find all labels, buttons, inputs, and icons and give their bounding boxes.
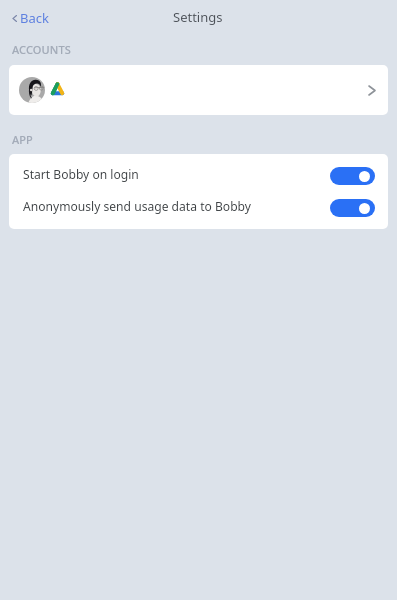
button[interactable]: Back <box>8 5 52 31</box>
other: Open account <box>369 86 375 95</box>
staticText: ACCOUNTS <box>12 42 71 57</box>
button[interactable]: Open account <box>9 65 388 115</box>
staticText: Back <box>20 9 49 27</box>
button[interactable]: Start Bobby on login <box>9 160 388 192</box>
button[interactable]: Toggle Anonymously send usage data to Bo… <box>330 199 375 217</box>
staticText: Start Bobby on login <box>23 166 139 182</box>
staticText: APP <box>12 132 33 147</box>
staticText: Settings <box>173 8 223 26</box>
button[interactable]: Anonymously send usage data to Bobby <box>9 192 388 223</box>
staticText: Anonymously send usage data to Bobby <box>23 198 251 214</box>
button[interactable]: Toggle Start Bobby on login <box>330 167 375 185</box>
